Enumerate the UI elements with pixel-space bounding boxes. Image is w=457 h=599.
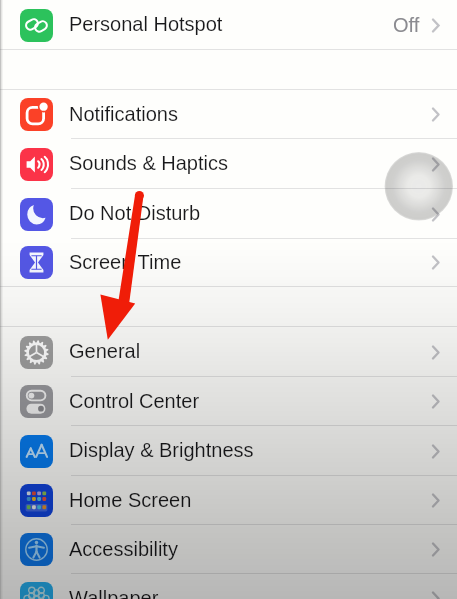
staticText: Notifications bbox=[69, 103, 431, 125]
button[interactable]: Accessibility bbox=[0, 525, 457, 574]
staticText: Screen Time bbox=[69, 251, 431, 273]
staticText: Home Screen bbox=[69, 489, 431, 511]
staticText: General bbox=[69, 340, 431, 362]
staticText: Control Center bbox=[69, 390, 431, 412]
button[interactable]: Notifications bbox=[0, 90, 457, 139]
staticText: Sounds & Haptics bbox=[69, 152, 431, 174]
button[interactable]: Wallpaper bbox=[0, 574, 457, 599]
button[interactable]: Home Screen bbox=[0, 476, 457, 525]
button[interactable]: Screen Time bbox=[0, 238, 457, 287]
button[interactable]: General bbox=[0, 327, 457, 377]
staticText: Personal Hotspot bbox=[69, 13, 393, 35]
button[interactable]: Display & Brightness bbox=[0, 426, 457, 476]
button[interactable]: Control Center bbox=[0, 377, 457, 426]
button[interactable]: Sounds & Haptics bbox=[0, 139, 457, 189]
button[interactable]: Do Not Disturb bbox=[0, 189, 457, 239]
staticText: Do Not Disturb bbox=[69, 202, 431, 224]
staticText: Off bbox=[393, 14, 420, 36]
button[interactable]: Personal Hotspot bbox=[0, 0, 457, 50]
staticText: Accessibility bbox=[69, 538, 431, 560]
staticText: Display & Brightness bbox=[69, 439, 431, 461]
staticText: Wallpaper bbox=[69, 587, 431, 599]
